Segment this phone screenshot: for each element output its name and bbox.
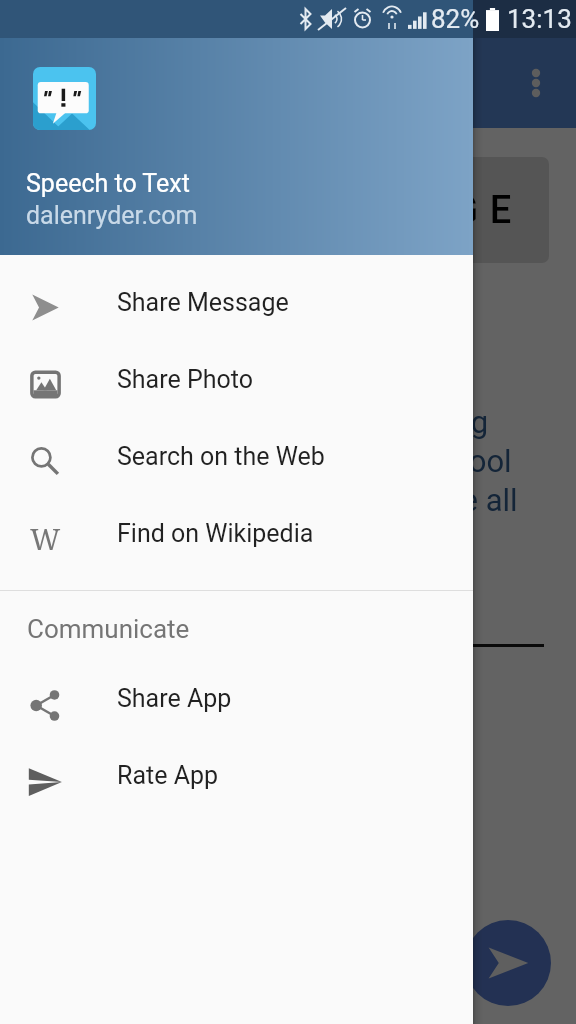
button[interactable]: Share App [0,660,473,737]
staticText: Speech to Text [26,169,190,198]
staticText: Sorry I am running late for the big meet… [30,404,518,518]
staticText: Search on the Web [117,442,325,471]
staticText: Share Photo [117,365,253,394]
staticText: Share Message [117,288,289,317]
button[interactable]: Send [465,920,551,1006]
staticText: Rate App [117,761,219,790]
staticText: Share App [117,684,232,713]
staticText: SHARE MESSAGE [70,188,523,233]
button[interactable]: W [0,495,473,572]
button[interactable]: Rate App [0,737,473,814]
staticText: 13:13 [507,4,572,34]
staticText: Communicate [27,614,190,644]
button[interactable]: SHARE MESSAGE [27,157,549,263]
staticText: Find on Wikipedia [117,519,314,548]
staticText: W [30,519,61,558]
staticText: 82% [431,4,480,34]
button[interactable]: Search on the Web [0,418,473,495]
button[interactable]: Share Photo [0,341,473,418]
button[interactable]: More options [508,55,564,111]
staticText: dalenryder.com [26,201,198,230]
button[interactable]: Share Message [0,264,473,341]
